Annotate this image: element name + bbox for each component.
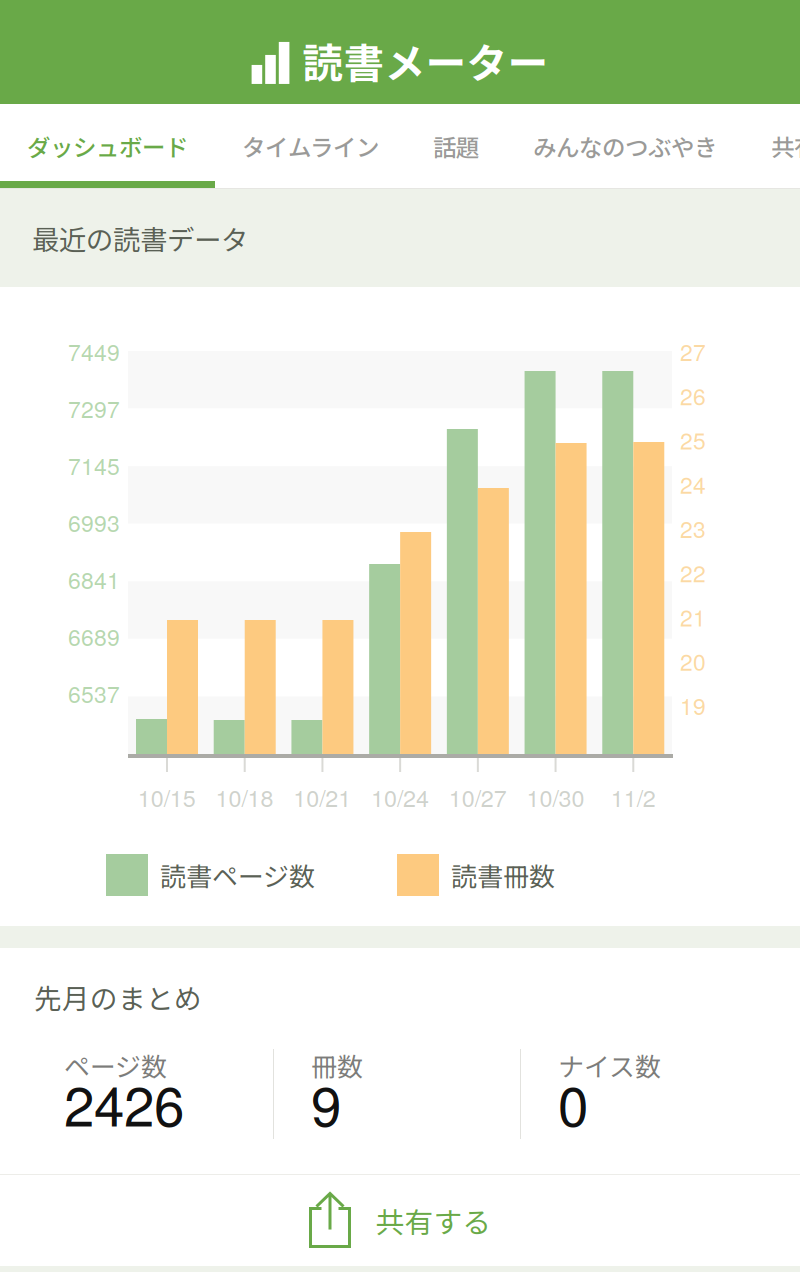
staticText: 読書冊数: [451, 856, 555, 894]
staticText: 24: [680, 467, 706, 500]
staticText: 25: [680, 423, 706, 456]
staticText: みんなのつぶやき: [533, 129, 717, 163]
staticText: 話題: [433, 129, 479, 163]
staticText: 20: [680, 644, 706, 677]
button[interactable]: 話題: [406, 104, 506, 188]
staticText: ダッシュボード: [27, 129, 188, 163]
button[interactable]: みんなのつぶやき: [506, 104, 744, 188]
staticText: 22: [680, 556, 706, 589]
staticText: 6993: [68, 506, 120, 538]
staticText: 19: [680, 689, 706, 721]
button[interactable]: ダッシュボード: [0, 104, 215, 188]
button[interactable]: 共有: [744, 104, 800, 188]
button[interactable]: タイムライン: [215, 104, 406, 188]
staticText: 10/27: [449, 780, 507, 814]
staticText: タイムライン: [242, 129, 379, 163]
staticText: 0: [558, 1064, 588, 1142]
staticText: 先月のまとめ: [34, 977, 202, 1017]
staticText: 冊数: [311, 1046, 363, 1084]
staticText: 10/30: [526, 780, 584, 814]
staticText: 26: [680, 379, 706, 412]
staticText: 7297: [68, 392, 120, 424]
staticText: 10/24: [371, 780, 429, 814]
staticText: 2426: [64, 1064, 184, 1142]
staticText: 11/2: [611, 780, 656, 814]
staticText: 23: [680, 512, 706, 544]
staticText: ページ数: [64, 1046, 167, 1084]
staticText: 9: [311, 1064, 341, 1142]
staticText: 最近の読書データ: [32, 218, 248, 258]
staticText: 7449: [68, 335, 120, 367]
staticText: 読書ページ数: [160, 856, 315, 894]
staticText: 読書メーター: [302, 31, 548, 90]
staticText: 7145: [68, 449, 120, 481]
staticText: 6689: [68, 620, 120, 652]
staticText: 10/15: [138, 780, 196, 814]
staticText: 10/18: [216, 780, 274, 814]
staticText: 27: [680, 335, 706, 367]
staticText: ナイス数: [558, 1046, 661, 1084]
staticText: 10/21: [293, 780, 351, 814]
button[interactable]: 共有する: [0, 1175, 800, 1266]
staticText: 共有する: [375, 1200, 491, 1241]
staticText: 21: [680, 600, 706, 633]
staticText: 6841: [68, 563, 120, 595]
staticText: 6537: [68, 677, 120, 709]
staticText: 共有: [771, 129, 800, 163]
